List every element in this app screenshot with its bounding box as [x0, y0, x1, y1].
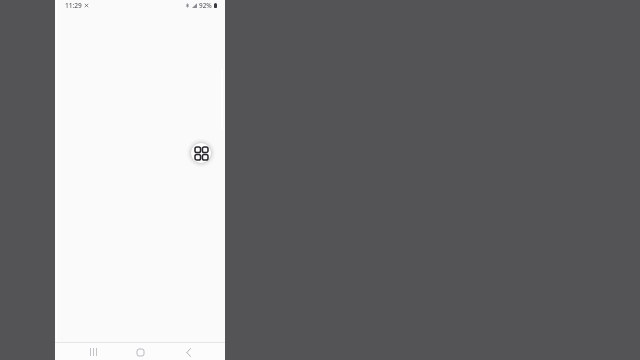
staticText: 11:29	[65, 1, 82, 10]
button[interactable]: Apps	[188, 140, 214, 166]
staticText: 92%	[199, 1, 212, 10]
button[interactable]: Home	[132, 344, 148, 360]
button[interactable]: Recent apps	[85, 344, 101, 360]
button[interactable]: Back	[180, 344, 196, 360]
